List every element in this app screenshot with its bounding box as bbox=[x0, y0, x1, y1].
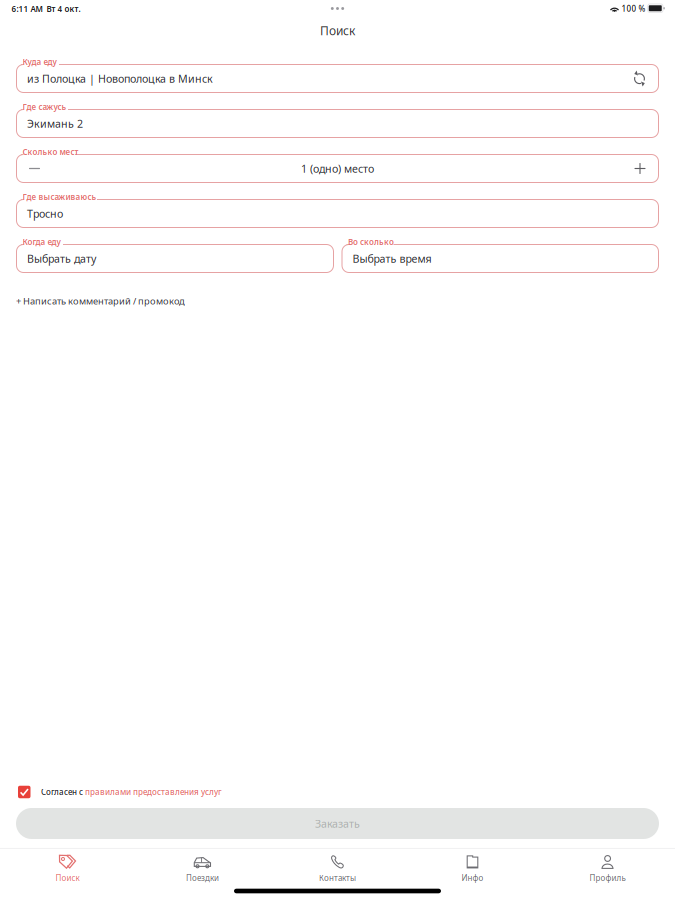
staticText: Профиль bbox=[589, 873, 625, 883]
staticText: Заказать bbox=[315, 816, 360, 831]
staticText: Поездки bbox=[186, 873, 219, 883]
button[interactable]: Инфо bbox=[405, 849, 540, 889]
button[interactable]: Поездки bbox=[135, 849, 270, 889]
staticText: 6:11 AM Вт 4 окт. bbox=[12, 4, 81, 14]
staticText: Экимань 2 bbox=[27, 116, 83, 131]
staticText: Согласен с bbox=[41, 787, 85, 797]
staticText: Выбрать время bbox=[352, 251, 431, 266]
button[interactable]: Контакты bbox=[270, 849, 405, 889]
staticText: Сколько мест bbox=[23, 146, 79, 157]
staticText: Тросно bbox=[27, 206, 63, 221]
button[interactable]: Профиль bbox=[540, 849, 675, 889]
staticText: 1 (одно) место bbox=[301, 161, 374, 176]
staticText: Когда еду bbox=[23, 236, 61, 247]
button[interactable]: Поиск bbox=[0, 849, 135, 889]
button[interactable]: Убрать место bbox=[20, 154, 48, 182]
button[interactable]: + Написать комментарий / промокод bbox=[16, 293, 201, 309]
staticText: Где высаживаюсь bbox=[23, 191, 97, 202]
staticText: Поиск bbox=[55, 873, 79, 883]
staticText: Во сколько bbox=[348, 236, 394, 247]
staticText: Инфо bbox=[461, 873, 483, 883]
staticText: правилами предоставления услуг bbox=[85, 787, 222, 797]
staticText: Где сажусь bbox=[23, 101, 67, 112]
staticText: Выбрать дату bbox=[27, 251, 96, 266]
staticText: из Полоцка | Новополоцка в Минск bbox=[27, 71, 213, 86]
staticText: 100 % bbox=[621, 3, 645, 14]
staticText: + Написать комментарий / промокод bbox=[16, 295, 185, 307]
staticText: Поиск bbox=[320, 22, 355, 38]
button[interactable]: Поменять направление bbox=[626, 64, 654, 92]
button[interactable]: Добавить место bbox=[626, 154, 654, 182]
staticText: Куда еду bbox=[23, 56, 57, 67]
button[interactable]: Поиск bbox=[297, 18, 377, 42]
button[interactable]: Согласен с bbox=[16, 783, 248, 801]
staticText: Контакты bbox=[319, 873, 356, 883]
button[interactable]: Заказать bbox=[16, 808, 659, 839]
